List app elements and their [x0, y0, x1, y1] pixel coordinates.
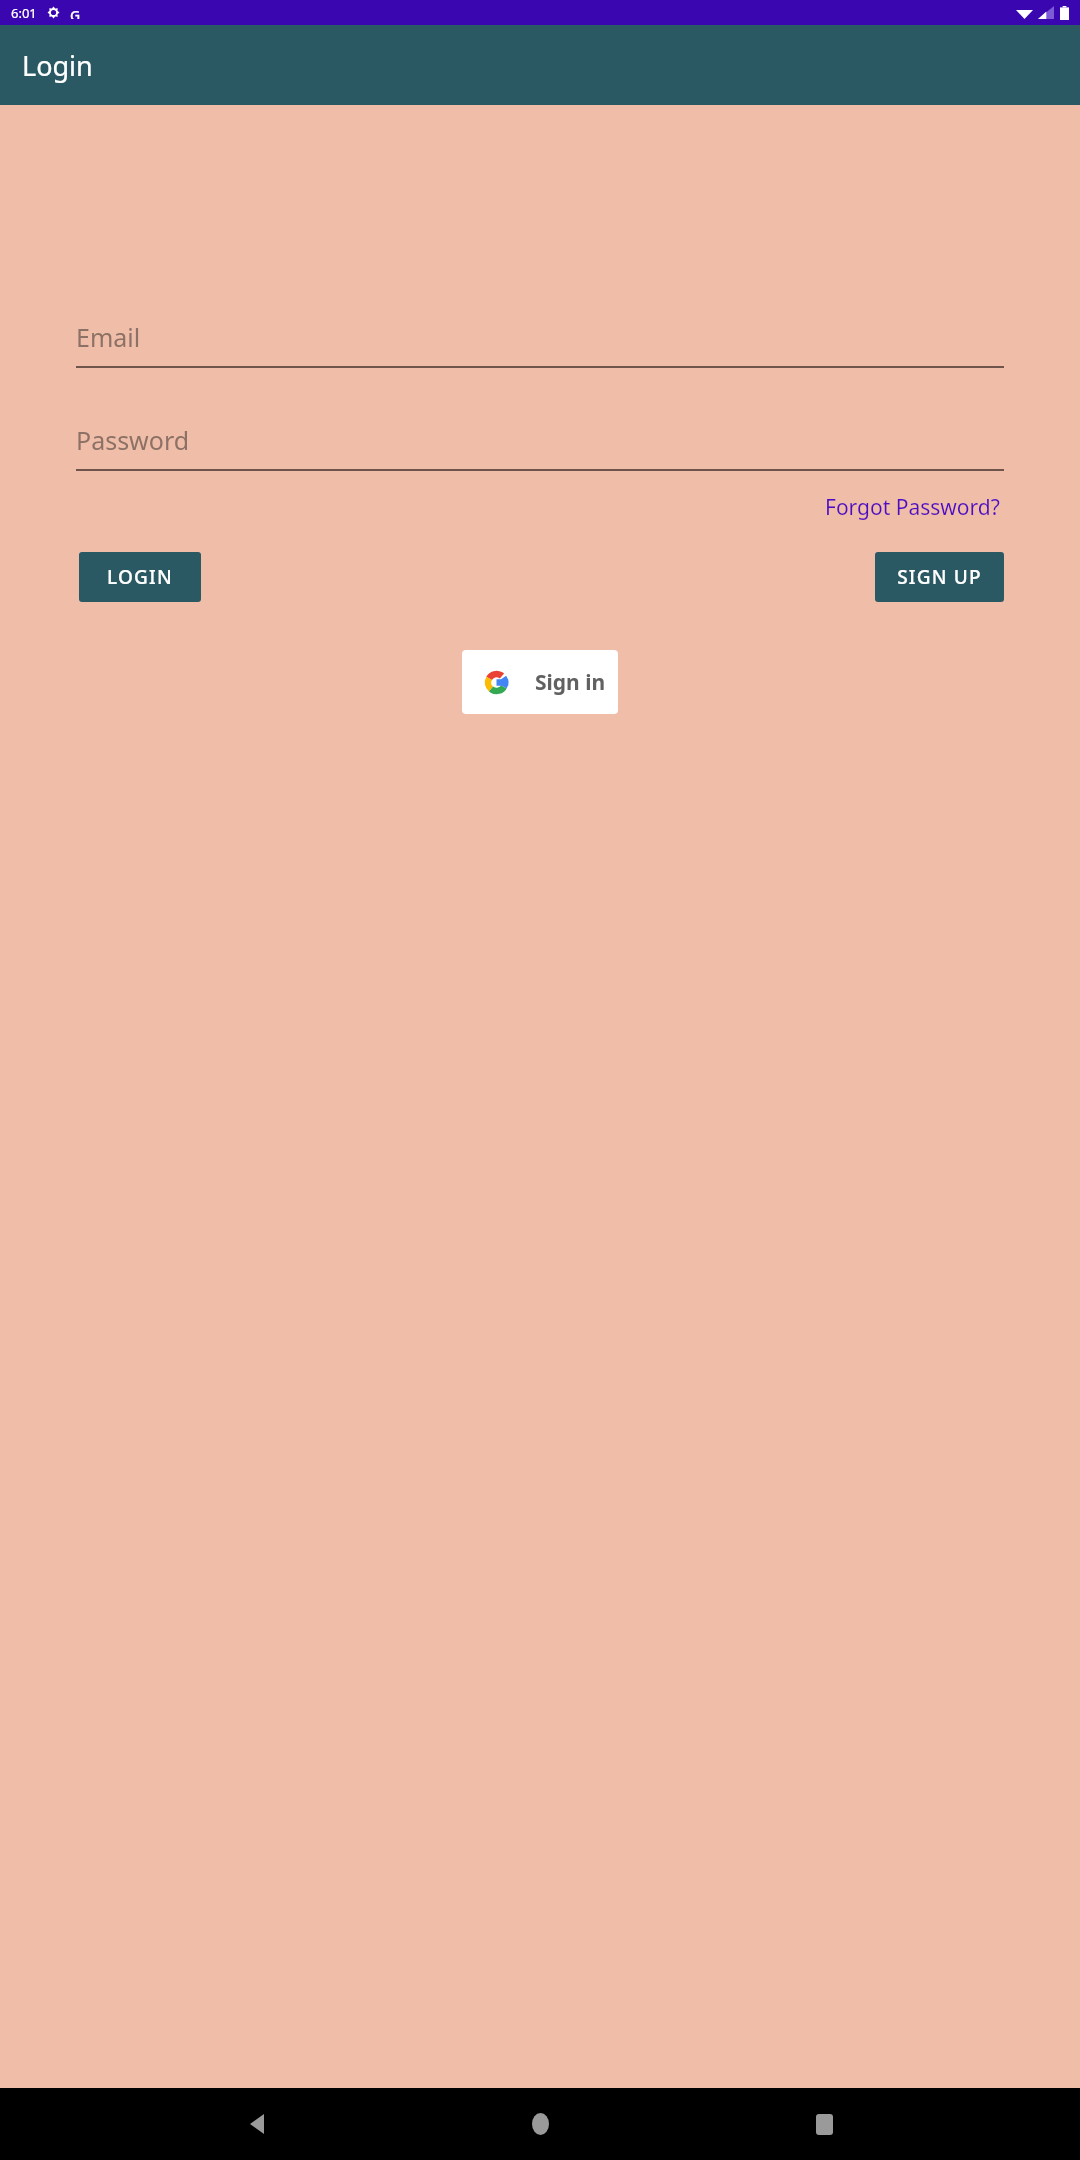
staticText: G	[70, 6, 81, 19]
button[interactable]: Password	[76, 423, 1004, 471]
staticText: LOGIN	[107, 564, 173, 590]
button[interactable]: Forgot Password?	[821, 489, 1004, 526]
staticText: SIGN UP	[897, 564, 982, 590]
button[interactable]: Email	[76, 320, 1004, 368]
button[interactable]: Back	[230, 2097, 284, 2151]
staticText: Email	[76, 320, 141, 354]
staticText: Password	[76, 423, 190, 457]
button[interactable]: Recent apps	[797, 2097, 851, 2151]
staticText: Login	[22, 47, 93, 84]
staticText: Forgot Password?	[825, 493, 1000, 522]
button[interactable]: Home	[513, 2097, 567, 2151]
staticText: Sign in	[535, 668, 606, 697]
staticText: 6:01	[11, 4, 37, 22]
button[interactable]: Sign in	[462, 650, 618, 714]
button[interactable]: SIGN UP	[875, 552, 1004, 602]
button[interactable]: LOGIN	[79, 552, 201, 602]
